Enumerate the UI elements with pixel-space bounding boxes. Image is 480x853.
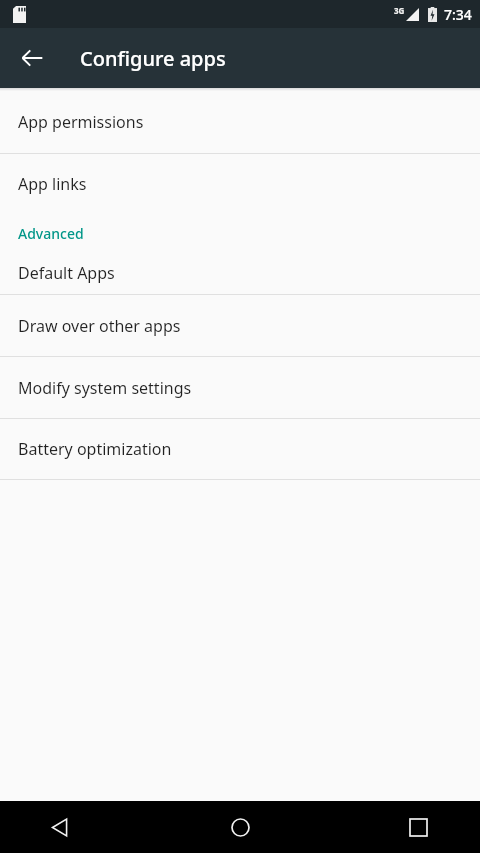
button[interactable]: Back (0, 801, 160, 853)
staticText: Advanced (18, 224, 84, 243)
staticText: App links (18, 173, 87, 195)
staticText: Draw over other apps (18, 315, 181, 337)
button[interactable]: Recent apps (320, 801, 480, 853)
button[interactable]: App permissions (0, 91, 480, 153)
button[interactable]: Back (8, 34, 56, 82)
staticText: App permissions (18, 111, 144, 133)
staticText: Battery optimization (18, 438, 172, 460)
staticText: 3G (394, 5, 405, 16)
staticText: Default Apps (18, 262, 115, 284)
button[interactable]: Battery optimization (0, 419, 480, 479)
button[interactable]: Draw over other apps (0, 295, 480, 356)
staticText: Modify system settings (18, 377, 192, 399)
staticText: Configure apps (80, 45, 226, 72)
staticText: 7:34 (444, 5, 472, 24)
button[interactable]: Home (160, 801, 320, 853)
button[interactable]: Default Apps (0, 252, 480, 294)
button[interactable]: App links (0, 154, 480, 214)
button[interactable]: Modify system settings (0, 357, 480, 418)
